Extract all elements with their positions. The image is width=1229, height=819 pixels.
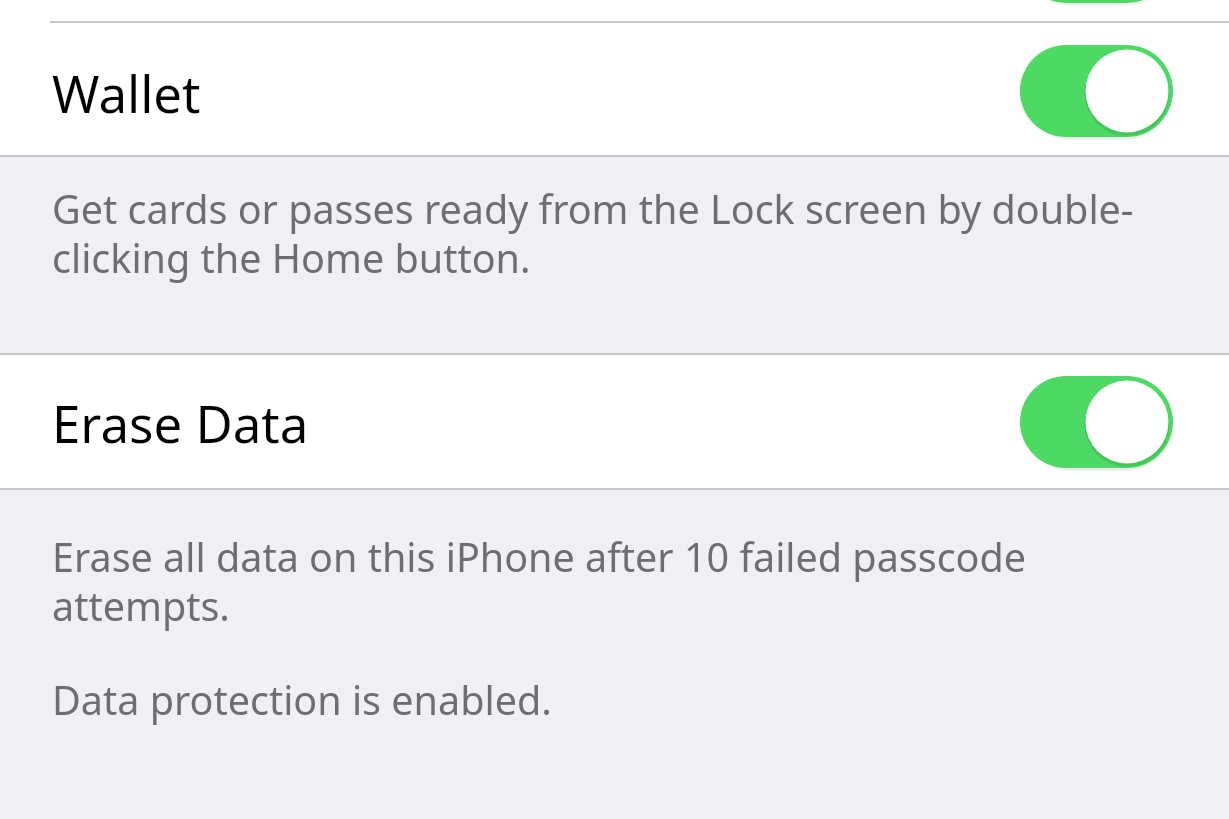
staticText: Wallet bbox=[52, 58, 201, 127]
staticText: Erase all data on this iPhone after 10 f… bbox=[52, 530, 1027, 632]
staticText: Data protection is enabled. bbox=[52, 673, 552, 727]
staticText: Get cards or passes ready from the Lock … bbox=[52, 182, 1134, 284]
staticText: Erase Data bbox=[52, 388, 309, 457]
